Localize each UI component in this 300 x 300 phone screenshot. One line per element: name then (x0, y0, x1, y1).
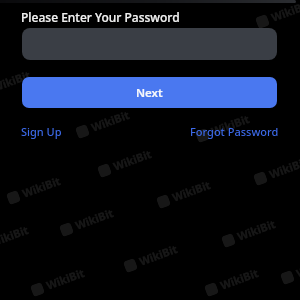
button[interactable]: Next (22, 77, 277, 108)
staticText: WikiBit (111, 146, 154, 174)
staticText: Next (136, 85, 163, 101)
staticText: WikiBit (269, 0, 300, 25)
staticText: WikiBit (44, 265, 87, 293)
staticText: WikiBit (0, 222, 31, 250)
staticText: WikiBit (170, 177, 213, 205)
staticText: WikiBit (267, 154, 300, 182)
staticText: WikiBit (20, 173, 63, 201)
staticText: WikiBit (89, 107, 132, 135)
staticText: WikiBit (235, 216, 278, 244)
staticText: WikiBit (218, 265, 261, 293)
button[interactable]: Forgot Password (190, 124, 279, 139)
staticText: Please Enter Your Password (21, 9, 180, 25)
staticText: WikiBit (209, 111, 252, 139)
staticText: WikiBit (0, 67, 33, 95)
staticText: WikiBit (73, 205, 116, 233)
button[interactable] (22, 28, 277, 60)
staticText: WikiBit (137, 241, 180, 269)
staticText: WikiBit (294, 253, 300, 281)
button[interactable]: Sign Up (21, 124, 62, 139)
